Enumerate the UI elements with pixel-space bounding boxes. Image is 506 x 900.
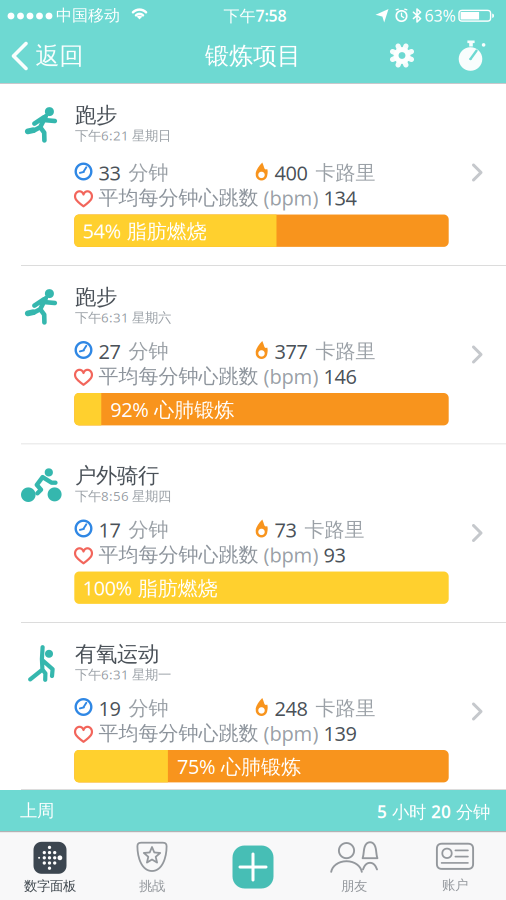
staticText: 分钟 [128,517,168,542]
staticText: 户外骑行 [75,462,159,489]
staticText: 248 [274,695,307,722]
staticText: 73 [274,516,296,543]
staticText: 92% 心肺锻炼 [110,396,234,422]
staticText: 返回 [35,41,83,71]
staticText: 卡路里 [315,339,375,364]
button[interactable]: 朋友 [330,842,378,894]
staticText: 19 [98,695,120,722]
button[interactable]: 数字面板 [24,842,76,894]
staticText: 63% [424,5,455,26]
staticText: 卡路里 [304,517,364,542]
staticText: 400 [274,159,307,186]
button[interactable]: 有氧运动 [0,623,506,790]
button[interactable]: 跑步 [0,266,506,444]
staticText: 54% 脂肪燃烧 [83,217,207,244]
staticText: 下午6:21 星期日 [75,126,171,144]
staticText: 平均每分钟心跳数 [98,542,258,567]
staticText: (bpm) [263,541,318,568]
staticText: 100% 脂肪燃烧 [83,574,218,601]
staticText: 平均每分钟心跳数 [98,364,258,389]
staticText: 中国移动 [56,6,120,25]
button[interactable]: Add [232,845,273,888]
staticText: (bpm) [263,720,318,747]
staticText: 卡路里 [315,696,375,721]
staticText: 跑步 [75,102,117,128]
button[interactable]: 挑战 [136,842,167,894]
staticText: 93 [323,541,345,568]
staticText: 分钟 [128,339,168,364]
staticText: 75% 心肺锻炼 [177,753,301,779]
button[interactable]: Stopwatch [456,40,486,72]
button[interactable]: 账户 [436,843,474,893]
staticText: (bpm) [263,184,318,211]
button[interactable]: 户外骑行 [0,444,506,623]
staticText: 下午6:31 星期六 [75,308,171,326]
staticText: 377 [274,338,307,365]
staticText: 下午8:56 星期四 [75,487,171,505]
staticText: 分钟 [128,160,168,185]
staticText: 27 [98,338,120,365]
staticText: 134 [323,184,356,211]
button[interactable]: Settings [389,42,415,68]
staticText: 挑战 [139,878,165,894]
staticText: 有氧运动 [75,641,159,667]
staticText: 146 [323,363,356,390]
staticText: 平均每分钟心跳数 [98,185,258,210]
staticText: 上周 [20,800,54,821]
staticText: 下午6:31 星期一 [75,665,171,683]
staticText: 33 [98,159,120,186]
staticText: 17 [98,516,120,543]
button[interactable]: 返回 [0,30,100,83]
button[interactable]: 跑步 [0,84,506,266]
staticText: 跑步 [75,284,117,310]
staticText: 5 小时 20 分钟 [377,800,490,823]
staticText: 朋友 [341,878,367,894]
staticText: 分钟 [128,696,168,721]
staticText: 下午7:58 [223,5,286,26]
staticText: 卡路里 [315,160,375,185]
staticText: 数字面板 [24,878,76,894]
staticText: 账户 [442,877,468,893]
staticText: 139 [323,720,356,747]
staticText: (bpm) [263,363,318,390]
staticText: 平均每分钟心跳数 [98,721,258,746]
staticText: 锻炼项目 [205,41,301,71]
